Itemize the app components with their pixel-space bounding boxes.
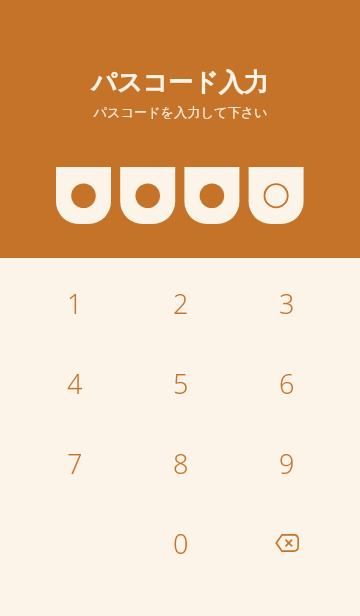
staticText: 8 [173, 445, 189, 482]
button[interactable]: 0 [128, 503, 234, 583]
button[interactable]: 5 [128, 343, 234, 423]
staticText: 1 [67, 285, 83, 322]
button[interactable]: 1 [22, 263, 128, 343]
button[interactable]: 2 [128, 263, 234, 343]
staticText: 0 [173, 525, 189, 562]
staticText: 5 [173, 365, 189, 402]
other: Passcode entry progress [56, 167, 303, 224]
button[interactable]: 4 [22, 343, 128, 423]
button[interactable]: 7 [22, 423, 128, 503]
staticText: 2 [173, 285, 189, 322]
button[interactable]: Delete [234, 503, 340, 583]
staticText: パスコード入力 [91, 67, 269, 98]
button[interactable]: 6 [234, 343, 340, 423]
staticText: 4 [67, 365, 83, 402]
button[interactable]: 3 [234, 263, 340, 343]
button[interactable]: 8 [128, 423, 234, 503]
staticText: 9 [279, 445, 295, 482]
button[interactable]: 9 [234, 423, 340, 503]
staticText: 7 [67, 445, 83, 482]
staticText: パスコードを入力して下さい [93, 104, 268, 121]
staticText: 3 [279, 285, 295, 322]
staticText: 6 [279, 365, 295, 402]
